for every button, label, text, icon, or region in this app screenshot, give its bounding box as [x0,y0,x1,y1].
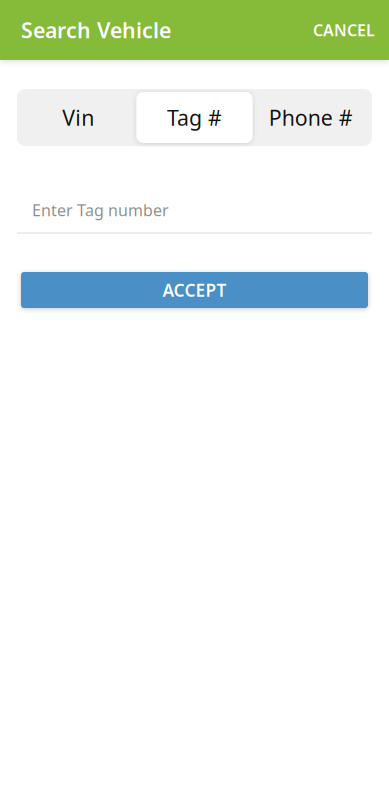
staticText: Search Vehicle [21,16,171,44]
staticText: Tag # [167,103,222,132]
button[interactable]: Vin [20,92,136,143]
button[interactable]: Tag # [136,92,253,143]
staticText: Vin [62,103,94,132]
button[interactable]: Phone # [253,92,369,143]
staticText: Enter Tag number [32,199,169,221]
staticText: ACCEPT [162,278,226,301]
staticText: Phone # [269,103,353,132]
button[interactable]: ACCEPT [21,272,368,308]
button[interactable]: CANCEL [303,9,383,51]
staticText: CANCEL [313,19,375,41]
